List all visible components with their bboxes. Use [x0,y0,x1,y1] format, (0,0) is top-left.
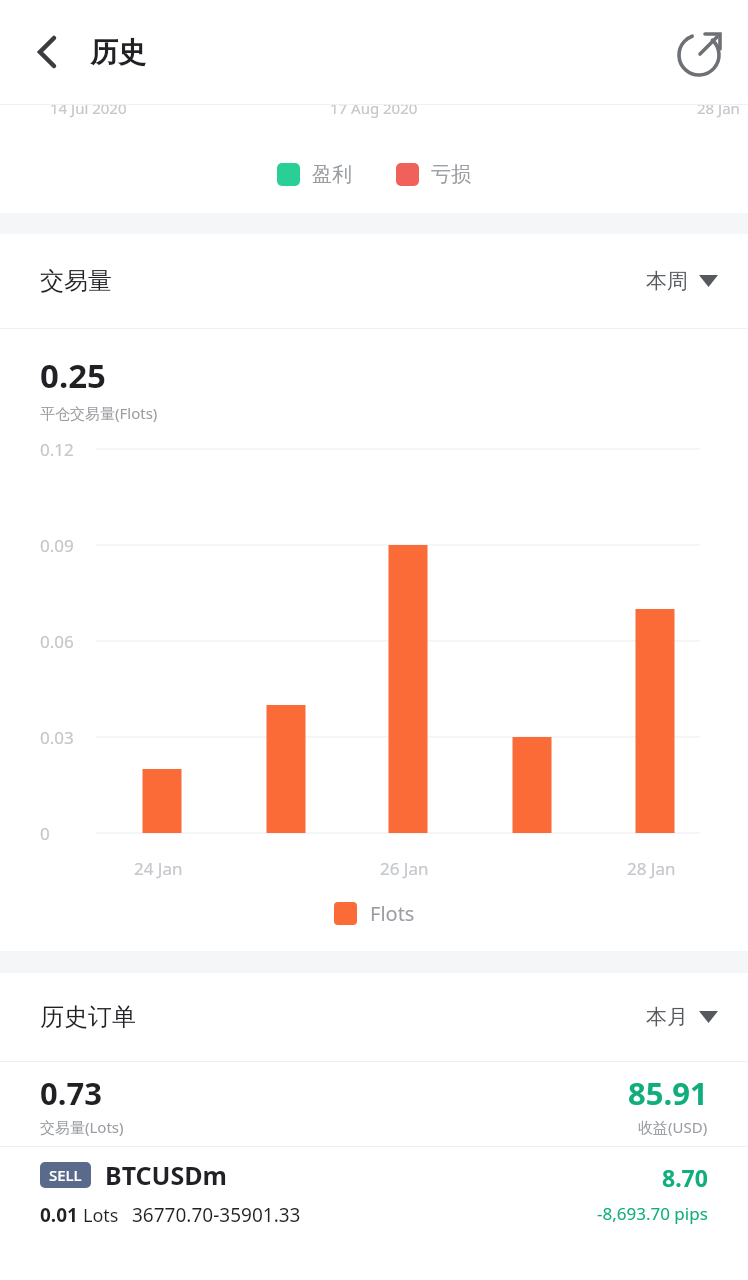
staticText: 28 Jan [697,105,740,118]
staticText: 历史 [90,35,146,70]
button[interactable]: 本周 [640,260,724,302]
staticText: -8,693.70 pips [597,1202,708,1225]
staticText: SELL [49,1165,82,1185]
staticText: 0.01 [40,1202,78,1228]
button[interactable]: 盈利 [277,162,352,187]
button[interactable]: Share [670,22,730,82]
staticText: 0.25 [40,353,106,398]
button[interactable]: 本月 [640,996,724,1038]
staticText: 0 [40,822,50,845]
staticText: 36770.70-35901.33 [132,1202,301,1228]
staticText: 26 Jan [380,857,429,880]
staticText: 14 Jul 2020 [50,105,127,118]
staticText: 0.03 [40,726,74,749]
staticText: 17 Aug 2020 [330,105,418,118]
staticText: 交易量(Lots) [40,1117,124,1137]
staticText: 0.06 [40,630,74,653]
staticText: 28 Jan [627,857,676,880]
staticText: 交易量 [40,266,112,296]
staticText: 亏损 [431,162,471,187]
button[interactable]: 亏损 [396,162,471,187]
staticText: 0.12 [40,438,74,461]
staticText: 历史订单 [40,1002,136,1032]
staticText: 0.73 [40,1072,102,1114]
staticText: Flots [370,900,415,927]
button[interactable]: Flots [334,900,415,927]
staticText: 8.70 [662,1162,708,1193]
staticText: 收益(USD) [638,1117,708,1137]
staticText: 85.91 [628,1072,708,1114]
staticText: 本周 [646,268,688,294]
staticText: 0.09 [40,534,74,557]
staticText: 平仓交易量(Flots) [40,403,158,423]
button[interactable]: Back [16,23,74,81]
staticText: 本月 [646,1004,688,1030]
staticText: 盈利 [312,162,352,187]
staticText: 24 Jan [134,857,183,880]
staticText: Lots [83,1203,119,1228]
staticText: BTCUSDm [105,1158,227,1192]
button[interactable]: SELL [0,1147,748,1239]
